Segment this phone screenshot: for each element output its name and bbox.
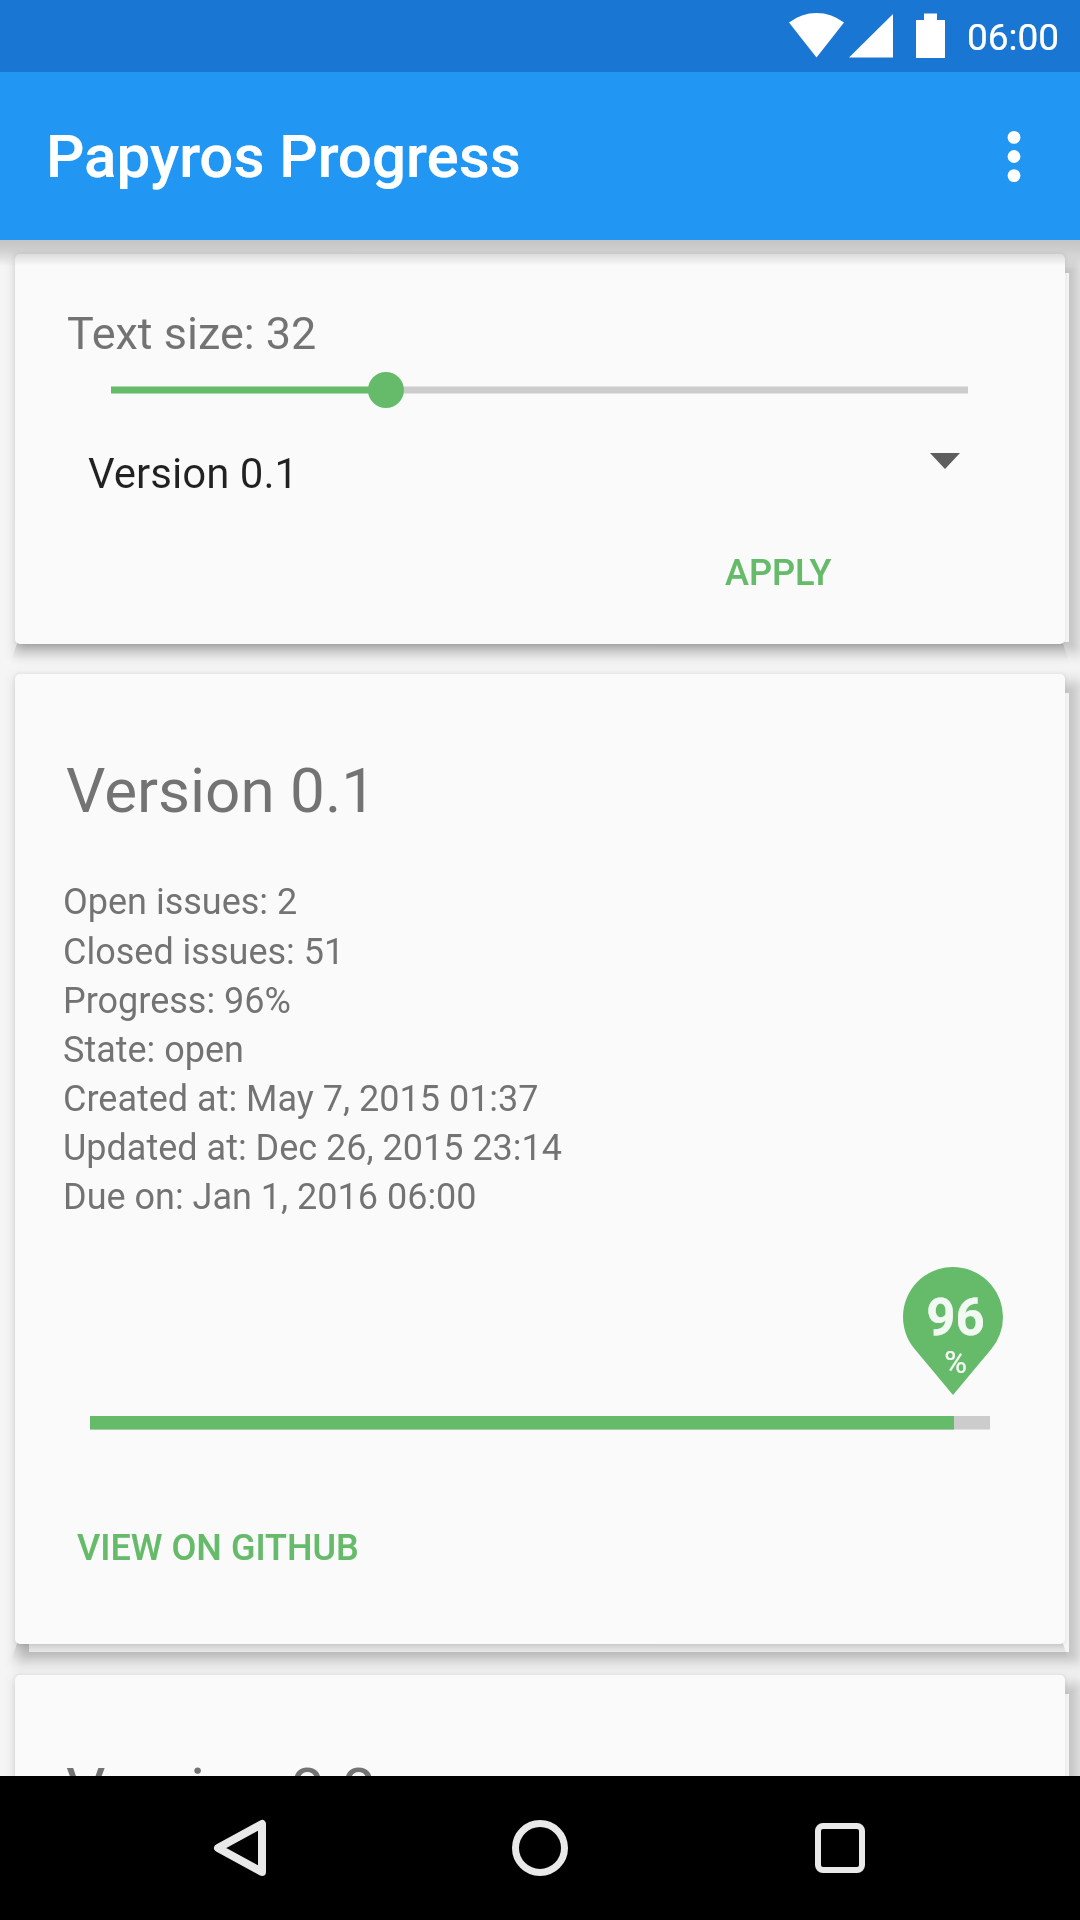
staticText: Papyros Progress — [46, 121, 521, 191]
staticText: 06:00 — [967, 16, 1060, 59]
button[interactable]: Select version — [15, 429, 1065, 519]
staticText: Open issues: 2 Closed issues: 51 Progres… — [63, 881, 563, 1218]
staticText: Text size: 32 — [67, 307, 317, 360]
button[interactable]: APPLY — [695, 536, 862, 610]
staticText: Version 0.1 — [66, 754, 377, 827]
staticText: Version 0.1 — [88, 449, 299, 498]
staticText: Version 0.0 — [66, 1754, 377, 1827]
button[interactable]: Back — [168, 1776, 312, 1920]
staticText: % — [944, 1344, 967, 1380]
staticText: APPLY — [725, 552, 832, 594]
button[interactable]: VIEW ON GITHUB — [47, 1511, 389, 1585]
staticText: VIEW ON GITHUB — [77, 1527, 359, 1569]
button[interactable]: More options — [966, 108, 1062, 204]
button[interactable]: Recent apps — [768, 1776, 912, 1920]
button[interactable]: Home — [468, 1776, 612, 1920]
staticText: 96 — [926, 1288, 985, 1348]
button[interactable]: Text size slider — [15, 363, 1065, 423]
